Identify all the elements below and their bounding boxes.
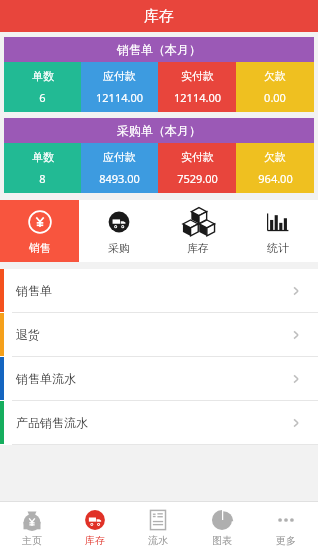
staticText: 库存 — [85, 534, 105, 547]
other: 销售 — [27, 209, 53, 235]
button[interactable]: 流水 — [126, 502, 190, 549]
button[interactable]: 采购 — [79, 200, 158, 262]
staticText: 964.00 — [258, 171, 293, 186]
button[interactable]: 图表 — [190, 502, 254, 549]
staticText: 12114.00 — [174, 90, 221, 105]
other: 库存 — [84, 509, 106, 531]
button[interactable]: 销售单（本月） — [4, 37, 314, 62]
staticText: 实付款 — [181, 69, 214, 83]
staticText: 欠款 — [264, 150, 286, 164]
staticText: 8493.00 — [99, 171, 140, 186]
staticText: 销售单 — [16, 283, 52, 298]
staticText: 12114.00 — [96, 90, 143, 105]
staticText: 采购单（本月） — [117, 123, 201, 138]
button[interactable]: 单数 — [4, 143, 81, 193]
staticText: 单数 — [32, 69, 54, 83]
staticText: 欠款 — [264, 69, 286, 83]
button[interactable]: 销售单 — [0, 269, 318, 312]
button[interactable]: 实付款 — [158, 143, 236, 193]
staticText: 单数 — [32, 150, 54, 164]
button[interactable]: 主页 — [0, 502, 63, 549]
button[interactable]: 采购单（本月） — [4, 118, 314, 143]
staticText: 应付款 — [103, 150, 136, 164]
button[interactable]: 应付款 — [81, 62, 158, 112]
other: 更多 — [275, 509, 297, 531]
staticText: 图表 — [212, 534, 232, 547]
staticText: 应付款 — [103, 69, 136, 83]
staticText: 销售单流水 — [16, 371, 76, 386]
button[interactable]: 单数 — [4, 62, 81, 112]
other: 流水 — [147, 509, 169, 531]
button[interactable]: 统计 — [238, 200, 318, 262]
button[interactable]: 库存 — [63, 502, 126, 549]
button[interactable]: 产品销售流水 — [0, 401, 318, 444]
other: 统计 — [265, 209, 291, 235]
button[interactable]: 退货 — [0, 313, 318, 356]
staticText: 6 — [39, 90, 46, 105]
staticText: 销售单（本月） — [117, 42, 201, 57]
staticText: 产品销售流水 — [16, 415, 88, 430]
button[interactable]: 欠款 — [236, 62, 314, 112]
other: 库存 — [185, 209, 211, 235]
staticText: 更多 — [276, 534, 296, 547]
staticText: 7529.00 — [177, 171, 218, 186]
button[interactable]: 库存 — [158, 200, 238, 262]
button[interactable]: 欠款 — [236, 143, 314, 193]
staticText: 销售 — [29, 241, 51, 255]
staticText: 实付款 — [181, 150, 214, 164]
staticText: 统计 — [267, 241, 289, 255]
staticText: 退货 — [16, 327, 40, 342]
staticText: 流水 — [148, 534, 168, 547]
staticText: 主页 — [22, 534, 42, 547]
staticText: 库存 — [187, 241, 209, 255]
staticText: 8 — [39, 171, 46, 186]
staticText: 0.00 — [264, 90, 286, 105]
button[interactable]: 销售 — [0, 200, 79, 262]
other: 采购 — [106, 209, 132, 235]
button[interactable]: 应付款 — [81, 143, 158, 193]
button[interactable]: 更多 — [254, 502, 318, 549]
button[interactable]: 实付款 — [158, 62, 236, 112]
staticText: 采购 — [108, 241, 130, 255]
other: 主页 — [21, 509, 43, 531]
other: 图表 — [211, 509, 233, 531]
button[interactable]: 销售单流水 — [0, 357, 318, 400]
staticText: 库存 — [144, 7, 174, 26]
